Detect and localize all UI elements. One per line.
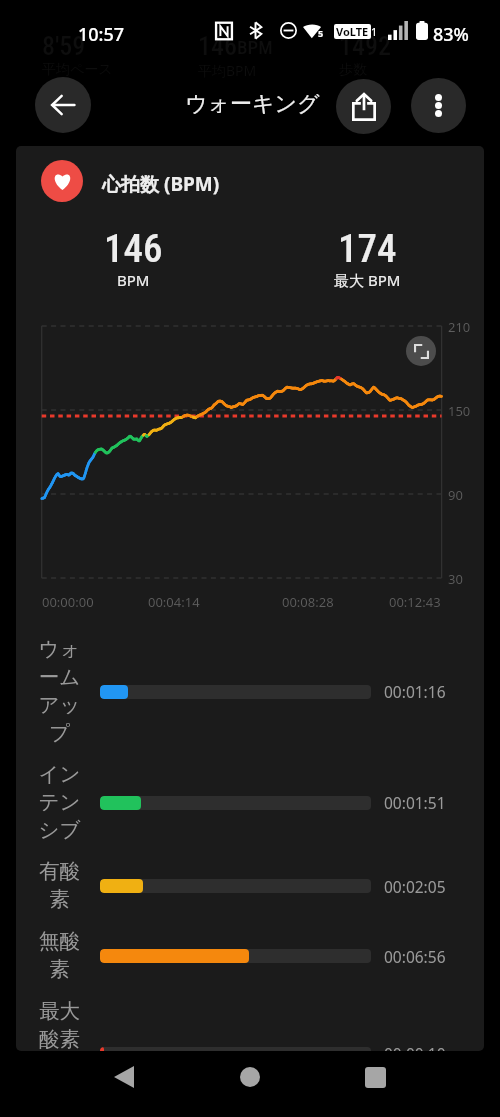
staticText: 00:12:43 <box>389 593 441 611</box>
button[interactable]: Recents <box>345 1047 405 1107</box>
staticText: 最大 BPM <box>334 270 401 290</box>
staticText: 8'59 <box>42 31 86 61</box>
staticText: 146 <box>198 31 237 61</box>
staticText: 30 <box>448 570 463 586</box>
staticText: 90 <box>448 486 463 502</box>
staticText: 00:04:14 <box>148 593 200 611</box>
staticText: 00:00:00 <box>42 593 94 611</box>
staticText: BPM <box>237 36 273 58</box>
staticText: 10:57 <box>78 22 125 47</box>
button[interactable]: Back <box>35 77 91 133</box>
staticText: BPM <box>117 270 150 290</box>
staticText: 00:01:16 <box>384 681 446 702</box>
staticText: 有酸素 <box>38 858 81 912</box>
staticText: 150 <box>448 402 471 418</box>
staticText: 平均ペース <box>42 61 113 79</box>
button[interactable]: Share <box>336 79 391 134</box>
staticText: 平均BPM <box>198 61 257 80</box>
button[interactable]: Home <box>220 1047 280 1107</box>
staticText: 83% <box>433 22 469 47</box>
staticText: 無酸素 <box>38 928 81 982</box>
button[interactable]: Expand chart <box>406 336 436 366</box>
staticText: 1492 <box>339 31 391 61</box>
button[interactable]: More options <box>411 78 466 133</box>
staticText: 00:06:56 <box>384 946 446 967</box>
staticText: 00:00:10 <box>384 1043 446 1051</box>
staticText: 210 <box>448 318 471 334</box>
staticText: インテンシブ <box>38 761 81 843</box>
staticText: 心拍数 (BPM) <box>102 171 220 197</box>
staticText: 最大酸素摂取量 <box>38 998 81 1051</box>
staticText: 00:02:05 <box>384 876 446 897</box>
staticText: VoLTE <box>336 24 369 39</box>
staticText: 174 <box>338 226 397 272</box>
staticText: 5 <box>318 27 324 39</box>
staticText: 00:01:51 <box>384 792 446 813</box>
staticText: ウォーキング <box>185 90 320 118</box>
staticText: 歩数 <box>339 61 367 79</box>
staticText: 146 <box>104 226 163 272</box>
button[interactable]: Back <box>94 1047 154 1107</box>
staticText: 1 <box>371 24 378 39</box>
staticText: ウォームアップ <box>38 636 81 746</box>
staticText: 00:08:28 <box>282 593 334 611</box>
